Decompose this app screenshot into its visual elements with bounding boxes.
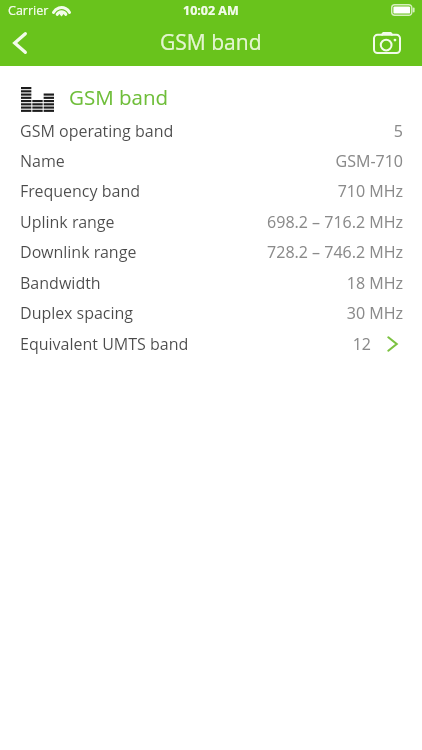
staticText: 728.2 – 746.2 MHz: [267, 241, 403, 263]
staticText: GSM band: [160, 28, 262, 57]
button[interactable]: Camera: [364, 20, 410, 66]
button[interactable]: GSM operating band: [0, 116, 422, 146]
staticText: 698.2 – 716.2 MHz: [267, 211, 403, 233]
staticText: Duplex spacing: [20, 302, 134, 324]
staticText: Name: [20, 150, 65, 172]
staticText: Frequency band: [20, 180, 141, 202]
button[interactable]: Duplex spacing: [0, 298, 422, 328]
staticText: GSM operating band: [20, 120, 174, 142]
button[interactable]: Frequency band: [0, 176, 422, 206]
staticText: Downlink range: [20, 241, 137, 263]
staticText: 10:02 AM: [183, 2, 239, 19]
button[interactable]: Equivalent UMTS band: [0, 329, 422, 359]
button[interactable]: Bandwidth: [0, 268, 422, 298]
staticText: Carrier: [8, 2, 49, 19]
staticText: 5: [393, 120, 403, 142]
staticText: Equivalent UMTS band: [20, 333, 189, 355]
staticText: 18 MHz: [346, 272, 403, 294]
staticText: Uplink range: [20, 211, 115, 233]
staticText: 710 MHz: [337, 180, 403, 202]
button[interactable]: Back: [0, 20, 43, 66]
button[interactable]: Downlink range: [0, 237, 422, 267]
staticText: 30 MHz: [346, 302, 403, 324]
staticText: 12: [352, 333, 371, 355]
button[interactable]: Uplink range: [0, 207, 422, 237]
button[interactable]: Name: [0, 146, 422, 176]
staticText: GSM-710: [335, 150, 403, 172]
staticText: Bandwidth: [20, 272, 101, 294]
staticText: GSM band: [69, 83, 169, 111]
